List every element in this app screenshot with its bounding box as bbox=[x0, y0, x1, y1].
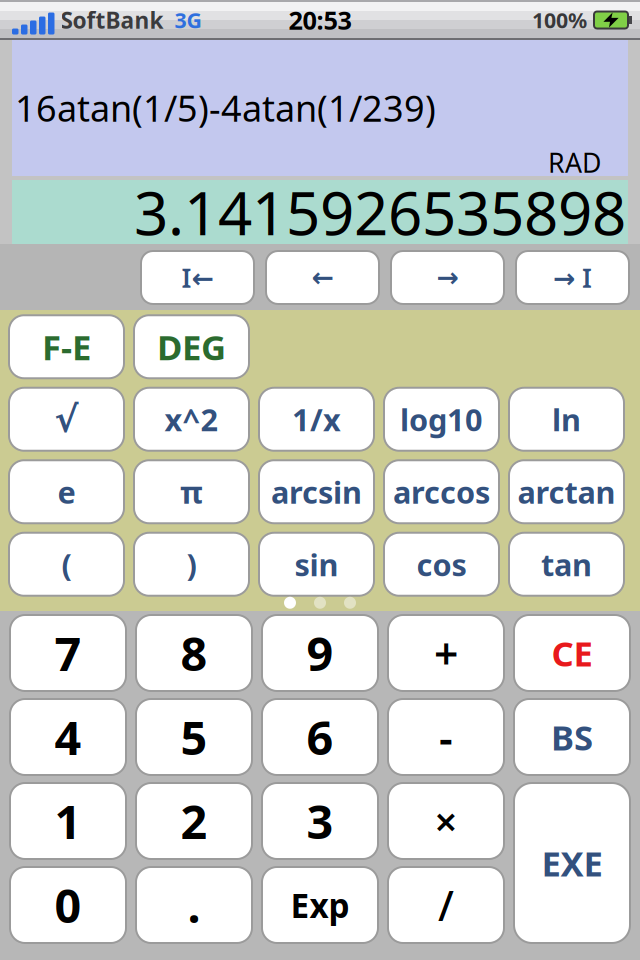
staticText: 1/x bbox=[292, 399, 341, 440]
button[interactable]: CE bbox=[513, 614, 631, 692]
staticText: tan bbox=[541, 544, 592, 585]
staticText: arccos bbox=[393, 471, 490, 512]
button[interactable]: arccos bbox=[383, 459, 500, 524]
staticText: RAD bbox=[548, 145, 601, 180]
staticText: √ bbox=[54, 399, 78, 440]
staticText: → bbox=[436, 262, 458, 293]
staticText: ln bbox=[552, 399, 581, 440]
button[interactable]: 5 bbox=[135, 698, 253, 776]
staticText: 3G bbox=[174, 6, 201, 34]
button[interactable]: . bbox=[135, 866, 253, 944]
staticText: ) bbox=[186, 544, 196, 585]
staticText: sin bbox=[294, 544, 338, 585]
button[interactable]: ( bbox=[8, 532, 125, 597]
staticText: F-E bbox=[42, 324, 91, 370]
staticText: 16atan(1/5)-4atan(1/239) bbox=[15, 84, 436, 132]
staticText: e bbox=[57, 471, 75, 512]
staticText: 4 bbox=[54, 706, 81, 768]
staticText: . bbox=[187, 874, 200, 936]
button[interactable]: 8 bbox=[135, 614, 253, 692]
button[interactable]: 1/x bbox=[258, 387, 375, 452]
staticText: 100% bbox=[532, 6, 587, 34]
button[interactable]: EXE bbox=[513, 782, 631, 944]
button[interactable]: Page 1 of 3 bbox=[284, 597, 356, 609]
staticText: 3.1415926535898 bbox=[134, 172, 626, 252]
button[interactable]: tan bbox=[508, 532, 625, 597]
staticText: SoftBank bbox=[60, 5, 163, 35]
button[interactable]: Move cursor right bbox=[390, 250, 505, 305]
button[interactable]: π bbox=[133, 459, 250, 524]
button[interactable]: Move cursor to start bbox=[140, 250, 255, 305]
button[interactable]: arctan bbox=[508, 459, 625, 524]
staticText: arctan bbox=[517, 471, 615, 512]
button[interactable]: 0 bbox=[9, 866, 127, 944]
button[interactable]: e bbox=[8, 459, 125, 524]
button[interactable]: 4 bbox=[9, 698, 127, 776]
button[interactable]: - bbox=[387, 698, 505, 776]
staticText: + bbox=[434, 625, 458, 681]
staticText: 8 bbox=[180, 622, 207, 684]
staticText: EXE bbox=[541, 840, 602, 886]
button[interactable]: cos bbox=[383, 532, 500, 597]
staticText: 7 bbox=[54, 622, 81, 684]
staticText: Exp bbox=[290, 883, 349, 927]
staticText: BS bbox=[551, 714, 593, 760]
button[interactable]: x^2 bbox=[133, 387, 250, 452]
staticText: ( bbox=[61, 544, 71, 585]
button[interactable]: DEG bbox=[133, 314, 250, 379]
button[interactable]: BS bbox=[513, 698, 631, 776]
button[interactable]: 1 bbox=[9, 782, 127, 860]
button[interactable]: 2 bbox=[135, 782, 253, 860]
staticText: ← bbox=[311, 262, 333, 293]
staticText: x^2 bbox=[164, 399, 218, 440]
button[interactable]: F-E bbox=[8, 314, 125, 379]
staticText: / bbox=[438, 878, 454, 932]
button[interactable]: 6 bbox=[261, 698, 379, 776]
button[interactable]: 9 bbox=[261, 614, 379, 692]
button[interactable]: Move cursor left bbox=[265, 250, 380, 305]
staticText: 0 bbox=[54, 874, 81, 936]
button[interactable]: log10 bbox=[383, 387, 500, 452]
staticText: log10 bbox=[400, 399, 483, 440]
staticText: 5 bbox=[180, 706, 207, 768]
staticText: → I bbox=[553, 260, 592, 295]
staticText: π bbox=[180, 471, 203, 512]
button[interactable]: 3 bbox=[261, 782, 379, 860]
staticText: 6 bbox=[306, 706, 333, 768]
staticText: I← bbox=[181, 260, 213, 295]
button[interactable]: / bbox=[387, 866, 505, 944]
staticText: arcsin bbox=[271, 471, 362, 512]
button[interactable]: + bbox=[387, 614, 505, 692]
button[interactable]: √ bbox=[8, 387, 125, 452]
button[interactable]: ln bbox=[508, 387, 625, 452]
button[interactable]: ) bbox=[133, 532, 250, 597]
staticText: CE bbox=[551, 630, 592, 676]
button[interactable]: Exp bbox=[261, 866, 379, 944]
button[interactable]: Move cursor to end bbox=[515, 250, 630, 305]
staticText: × bbox=[434, 794, 457, 847]
staticText: 2 bbox=[180, 790, 207, 852]
button[interactable]: arcsin bbox=[258, 459, 375, 524]
staticText: 20:53 bbox=[288, 3, 351, 37]
button[interactable]: × bbox=[387, 782, 505, 860]
staticText: 1 bbox=[54, 790, 81, 852]
staticText: 9 bbox=[306, 622, 333, 684]
staticText: 3 bbox=[306, 790, 333, 852]
button[interactable]: 7 bbox=[9, 614, 127, 692]
staticText: cos bbox=[416, 544, 466, 585]
button[interactable]: sin bbox=[258, 532, 375, 597]
staticText: - bbox=[439, 709, 453, 765]
staticText: DEG bbox=[157, 324, 226, 370]
